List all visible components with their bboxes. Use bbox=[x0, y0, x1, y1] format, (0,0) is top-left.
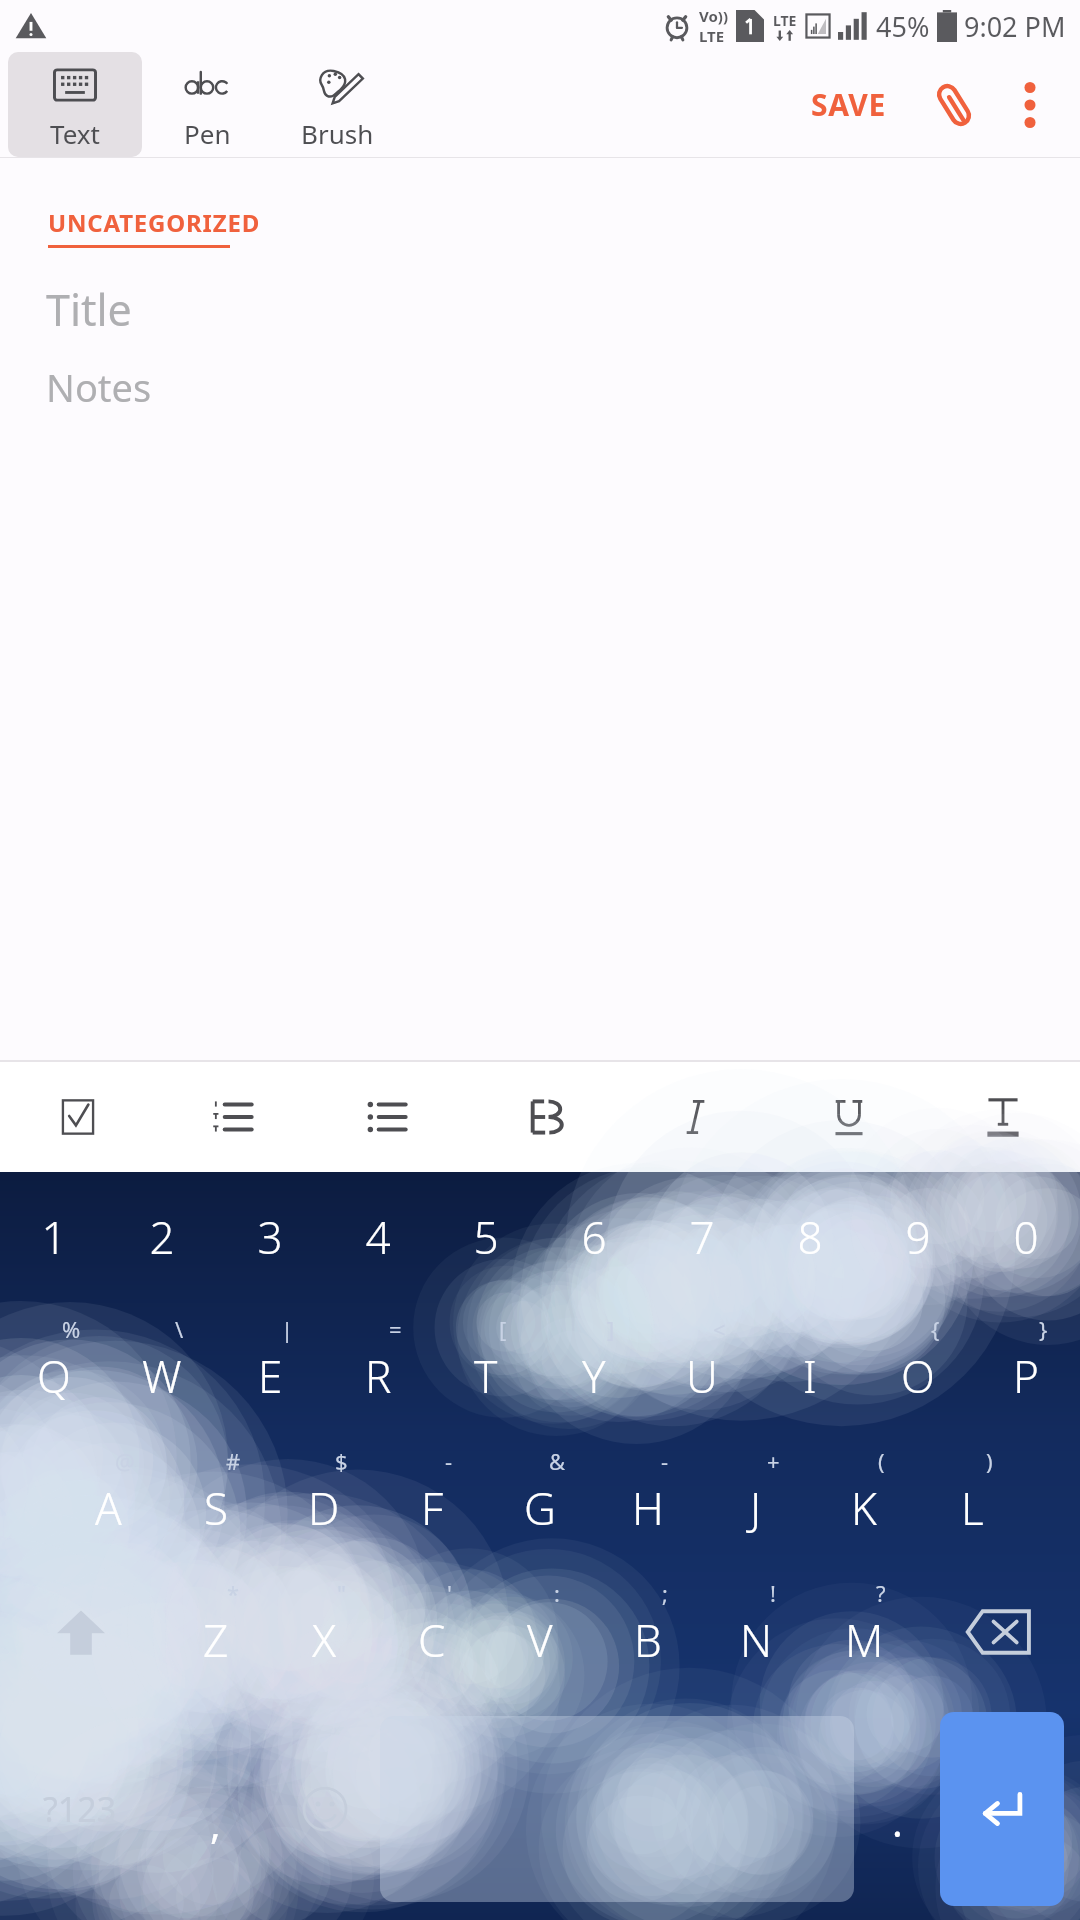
button[interactable]: Emoji bbox=[270, 1698, 380, 1920]
staticText: [ bbox=[499, 1314, 507, 1344]
button[interactable]: Space bbox=[380, 1716, 854, 1902]
button[interactable]: 5 bbox=[432, 1172, 540, 1302]
button[interactable]: { bbox=[864, 1302, 972, 1434]
button[interactable]: 6 bbox=[540, 1172, 648, 1302]
staticText: 1 bbox=[41, 1207, 67, 1267]
button[interactable]: SAVE bbox=[793, 64, 904, 145]
button[interactable]: \ bbox=[108, 1302, 216, 1434]
button[interactable]: Title bbox=[46, 280, 132, 339]
staticText: I bbox=[803, 1346, 817, 1406]
button[interactable]: , bbox=[160, 1698, 270, 1920]
button[interactable]: Shift bbox=[0, 1566, 162, 1698]
staticText: T bbox=[474, 1346, 498, 1406]
staticText: ] bbox=[607, 1314, 615, 1344]
button[interactable]: Bold bbox=[464, 1062, 618, 1172]
staticText: < bbox=[713, 1314, 726, 1344]
button[interactable]: + bbox=[702, 1434, 810, 1566]
button[interactable]: ; bbox=[594, 1566, 702, 1698]
button[interactable]: Italic bbox=[618, 1062, 772, 1172]
staticText: SAVE bbox=[811, 84, 886, 125]
button[interactable]: Attach bbox=[916, 67, 992, 143]
staticText: 2 bbox=[149, 1207, 175, 1267]
staticText: \ bbox=[175, 1314, 184, 1344]
staticText: 45% bbox=[876, 8, 930, 45]
button[interactable]: ' bbox=[378, 1566, 486, 1698]
staticText: G bbox=[524, 1478, 556, 1538]
button[interactable]: ) bbox=[918, 1434, 1026, 1566]
button[interactable]: @ bbox=[54, 1434, 162, 1566]
button[interactable]: 4 bbox=[324, 1172, 432, 1302]
staticText: - bbox=[661, 1446, 669, 1476]
button[interactable]: 2 bbox=[108, 1172, 216, 1302]
staticText: M bbox=[845, 1610, 884, 1670]
staticText: | bbox=[281, 1314, 294, 1344]
staticText: LTE bbox=[773, 11, 797, 30]
button[interactable]: " bbox=[270, 1566, 378, 1698]
staticText: : bbox=[554, 1578, 560, 1608]
staticText: P bbox=[1013, 1346, 1039, 1406]
button[interactable]: Checklist bbox=[0, 1062, 155, 1172]
button[interactable]: Backspace bbox=[918, 1566, 1080, 1698]
staticText: E bbox=[258, 1346, 283, 1406]
staticText: 6 bbox=[581, 1207, 607, 1267]
staticText: & bbox=[549, 1446, 566, 1476]
button[interactable]: Underline bbox=[772, 1062, 926, 1172]
button[interactable]: ( bbox=[810, 1434, 918, 1566]
staticText: Z bbox=[203, 1610, 229, 1670]
staticText: ( bbox=[878, 1446, 885, 1476]
button[interactable]: 9 bbox=[864, 1172, 972, 1302]
button[interactable]: % bbox=[0, 1302, 108, 1434]
button[interactable]: > bbox=[756, 1302, 864, 1434]
button[interactable]: Brush bbox=[272, 52, 402, 157]
button[interactable]: < bbox=[648, 1302, 756, 1434]
button[interactable]: Text color bbox=[926, 1062, 1080, 1172]
staticText: ? bbox=[876, 1578, 886, 1608]
staticText: A bbox=[95, 1478, 122, 1538]
button[interactable]: # bbox=[162, 1434, 270, 1566]
button[interactable]: . bbox=[854, 1698, 940, 1920]
button[interactable]: ? bbox=[810, 1566, 918, 1698]
button[interactable]: 7 bbox=[648, 1172, 756, 1302]
staticText: F bbox=[421, 1478, 444, 1538]
button[interactable]: UNCATEGORIZED bbox=[48, 206, 261, 248]
staticText: 8 bbox=[797, 1207, 823, 1267]
button[interactable]: = bbox=[324, 1302, 432, 1434]
button[interactable]: ?123 bbox=[0, 1698, 160, 1920]
button[interactable]: & bbox=[486, 1434, 594, 1566]
button[interactable]: Text bbox=[8, 52, 142, 157]
button[interactable]: 3 bbox=[216, 1172, 324, 1302]
button[interactable]: - bbox=[594, 1434, 702, 1566]
staticText: Y bbox=[582, 1346, 606, 1406]
button[interactable]: [ bbox=[432, 1302, 540, 1434]
button[interactable]: - bbox=[378, 1434, 486, 1566]
button[interactable]: * bbox=[162, 1566, 270, 1698]
staticText: 9:02 PM bbox=[964, 8, 1066, 45]
button[interactable]: Numbered list bbox=[155, 1062, 310, 1172]
staticText: * bbox=[227, 1578, 240, 1608]
staticText: { bbox=[931, 1314, 940, 1344]
button[interactable]: $ bbox=[270, 1434, 378, 1566]
staticText: % bbox=[62, 1314, 81, 1344]
staticText: 0 bbox=[1013, 1207, 1039, 1267]
button[interactable]: Enter bbox=[940, 1712, 1064, 1906]
button[interactable]: More options bbox=[992, 67, 1068, 143]
staticText: 9 bbox=[905, 1207, 931, 1267]
button[interactable]: 0 bbox=[972, 1172, 1080, 1302]
staticText: Q bbox=[37, 1346, 71, 1406]
staticText: Vo)) bbox=[699, 6, 728, 26]
button[interactable]: ] bbox=[540, 1302, 648, 1434]
button[interactable]: : bbox=[486, 1566, 594, 1698]
button[interactable]: 1 bbox=[0, 1172, 108, 1302]
button[interactable]: 8 bbox=[756, 1172, 864, 1302]
staticText: S bbox=[204, 1478, 229, 1538]
button[interactable]: } bbox=[972, 1302, 1080, 1434]
staticText: " bbox=[337, 1578, 346, 1608]
button[interactable]: Pen bbox=[142, 52, 272, 157]
button[interactable]: ! bbox=[702, 1566, 810, 1698]
staticText: K bbox=[851, 1478, 877, 1538]
button[interactable]: Bulleted list bbox=[310, 1062, 464, 1172]
button[interactable]: Notes bbox=[46, 361, 152, 413]
staticText: L bbox=[961, 1478, 984, 1538]
button[interactable]: | bbox=[216, 1302, 324, 1434]
